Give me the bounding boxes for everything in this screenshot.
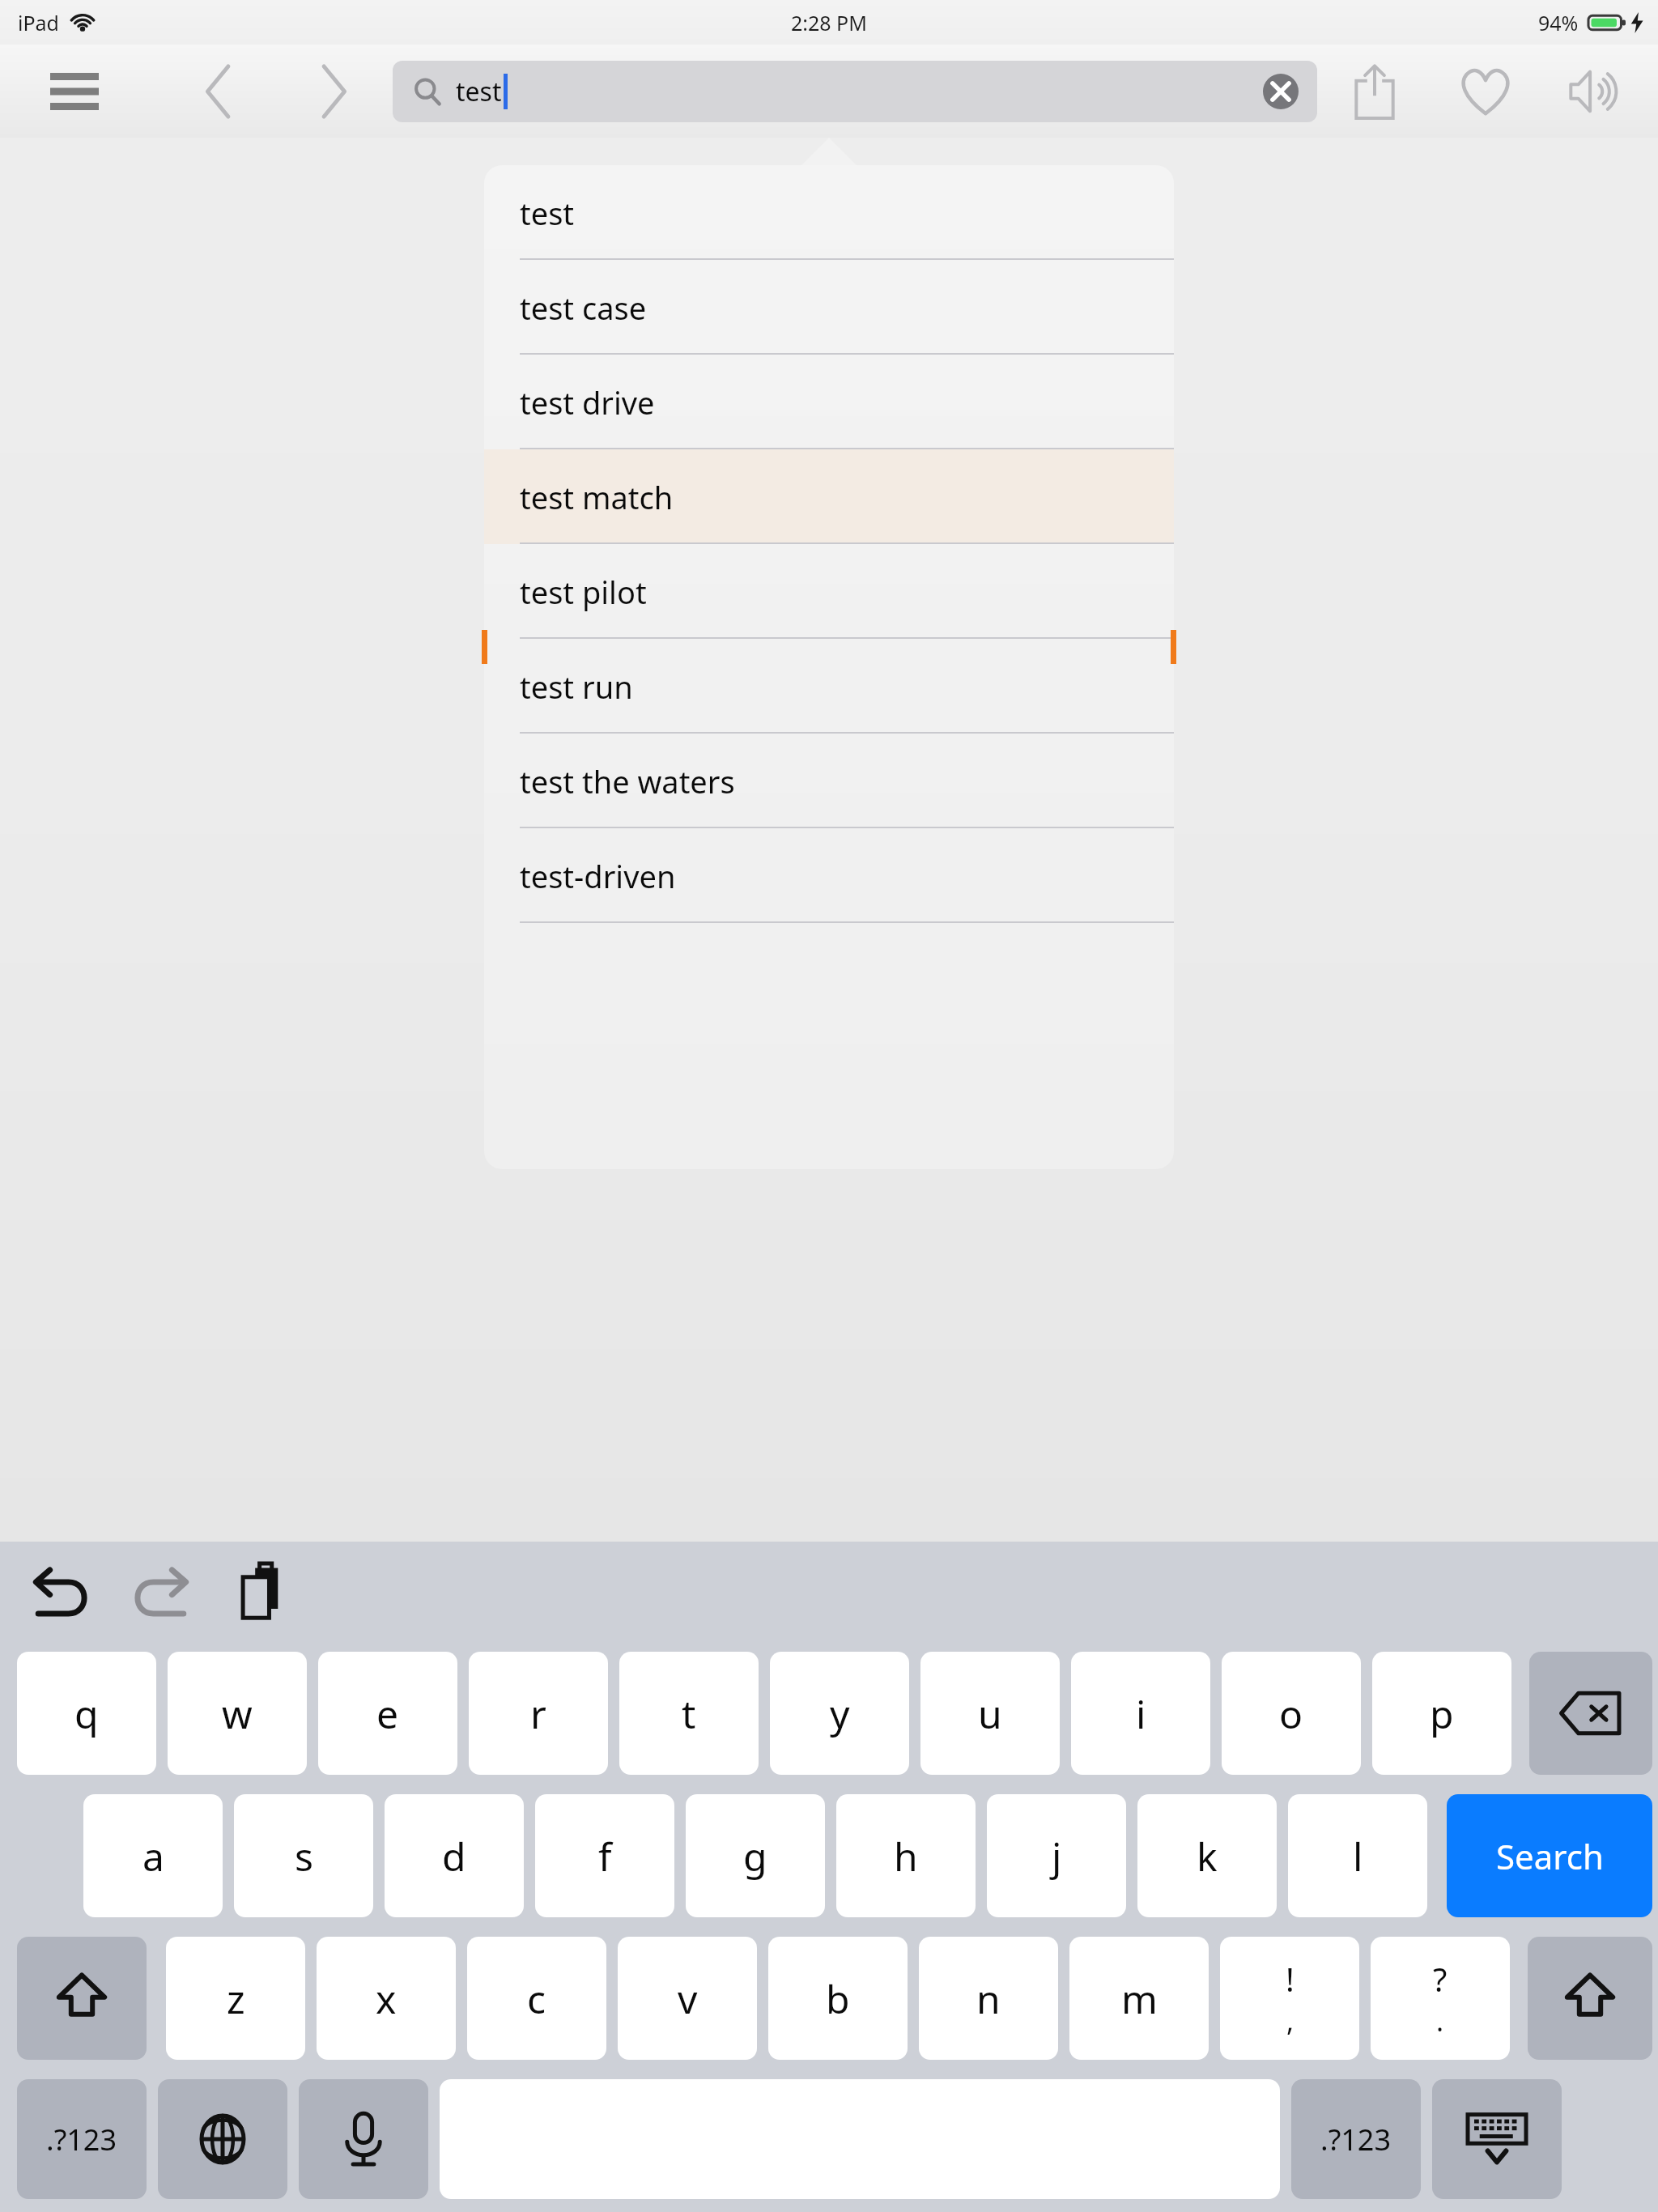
- button[interactable]: u: [920, 1652, 1060, 1775]
- button[interactable]: p: [1372, 1652, 1511, 1775]
- staticText: test-driven: [520, 855, 676, 897]
- staticText: d: [442, 1830, 466, 1882]
- staticText: test pilot: [520, 571, 647, 613]
- staticText: test the waters: [520, 760, 735, 802]
- button[interactable]: ?: [1371, 1937, 1510, 2060]
- button[interactable]: [440, 2079, 1280, 2199]
- staticText: r: [530, 1687, 546, 1740]
- staticText: w: [222, 1687, 253, 1740]
- button[interactable]: Forward: [295, 55, 372, 128]
- button[interactable]: Clear text: [1259, 70, 1303, 113]
- staticText: test case: [520, 287, 647, 329]
- button[interactable]: w: [168, 1652, 307, 1775]
- button[interactable]: test-driven: [484, 828, 1174, 923]
- staticText: .: [1436, 2002, 1444, 2040]
- staticText: b: [826, 1972, 850, 2025]
- staticText: test match: [520, 476, 674, 518]
- button[interactable]: .?123: [17, 2079, 147, 2199]
- button[interactable]: m: [1069, 1937, 1209, 2060]
- button[interactable]: a: [83, 1794, 223, 1917]
- staticText: test run: [520, 666, 633, 708]
- button[interactable]: test: [484, 165, 1174, 260]
- button[interactable]: test the waters: [484, 734, 1174, 828]
- button[interactable]: test match: [484, 449, 1174, 544]
- staticText: test drive: [520, 381, 655, 423]
- staticText: t: [682, 1687, 696, 1740]
- staticText: Search: [1496, 1833, 1604, 1879]
- staticText: u: [978, 1687, 1002, 1740]
- staticText: p: [1430, 1687, 1454, 1740]
- button[interactable]: Share: [1334, 54, 1415, 129]
- button[interactable]: Undo: [23, 1556, 100, 1627]
- button[interactable]: Search: [1447, 1794, 1652, 1917]
- button[interactable]: r: [469, 1652, 608, 1775]
- button[interactable]: test case: [484, 260, 1174, 355]
- button[interactable]: Pronounce: [1556, 54, 1637, 129]
- button[interactable]: test drive: [484, 355, 1174, 449]
- staticText: a: [142, 1830, 164, 1882]
- button[interactable]: Change keyboard: [158, 2079, 287, 2199]
- button[interactable]: x: [317, 1937, 456, 2060]
- staticText: f: [598, 1830, 612, 1882]
- button[interactable]: c: [467, 1937, 606, 2060]
- staticText: o: [1279, 1687, 1303, 1740]
- button[interactable]: Backspace: [1529, 1652, 1652, 1775]
- button[interactable]: Menu: [40, 63, 108, 120]
- staticText: test: [456, 74, 502, 109]
- staticText: .?123: [1320, 2120, 1392, 2159]
- button[interactable]: .?123: [1291, 2079, 1421, 2199]
- staticText: i: [1136, 1687, 1146, 1740]
- button[interactable]: h: [836, 1794, 976, 1917]
- button[interactable]: e: [318, 1652, 457, 1775]
- button[interactable]: Favorite: [1445, 54, 1526, 129]
- button[interactable]: Paste: [225, 1556, 303, 1627]
- staticText: v: [678, 1972, 698, 2025]
- staticText: g: [743, 1830, 767, 1882]
- button[interactable]: n: [919, 1937, 1058, 2060]
- staticText: !: [1286, 1957, 1295, 2001]
- staticText: m: [1121, 1972, 1158, 2025]
- button[interactable]: Hide keyboard: [1432, 2079, 1562, 2199]
- button[interactable]: l: [1288, 1794, 1427, 1917]
- staticText: 94%: [1538, 9, 1579, 36]
- button[interactable]: test: [393, 61, 1317, 122]
- staticText: j: [1052, 1830, 1062, 1882]
- staticText: y: [830, 1687, 850, 1740]
- button[interactable]: b: [768, 1937, 908, 2060]
- staticText: e: [376, 1687, 399, 1740]
- staticText: n: [976, 1972, 1001, 2025]
- button[interactable]: Dictation: [299, 2079, 428, 2199]
- staticText: test: [520, 192, 575, 234]
- staticText: c: [527, 1972, 546, 2025]
- staticText: 2:28 PM: [791, 9, 867, 36]
- button[interactable]: i: [1071, 1652, 1210, 1775]
- button[interactable]: Redo: [121, 1556, 199, 1627]
- button[interactable]: g: [686, 1794, 825, 1917]
- staticText: k: [1197, 1830, 1218, 1882]
- button[interactable]: !: [1220, 1937, 1359, 2060]
- button[interactable]: Shift: [17, 1937, 147, 2060]
- staticText: z: [227, 1972, 245, 2025]
- button[interactable]: s: [234, 1794, 373, 1917]
- button[interactable]: j: [987, 1794, 1126, 1917]
- button[interactable]: Back: [180, 55, 257, 128]
- button[interactable]: test pilot: [484, 544, 1174, 639]
- button[interactable]: v: [618, 1937, 757, 2060]
- button[interactable]: Shift: [1528, 1937, 1652, 2060]
- staticText: q: [74, 1687, 99, 1740]
- button[interactable]: q: [17, 1652, 156, 1775]
- button[interactable]: o: [1222, 1652, 1361, 1775]
- button[interactable]: d: [385, 1794, 524, 1917]
- staticText: s: [295, 1830, 313, 1882]
- staticText: ?: [1433, 1957, 1448, 2001]
- staticText: ,: [1286, 2002, 1295, 2040]
- button[interactable]: f: [535, 1794, 674, 1917]
- button[interactable]: t: [619, 1652, 759, 1775]
- staticText: x: [376, 1972, 397, 2025]
- button[interactable]: z: [166, 1937, 305, 2060]
- button[interactable]: k: [1137, 1794, 1277, 1917]
- button[interactable]: test run: [484, 639, 1174, 734]
- staticText: h: [894, 1830, 918, 1882]
- button[interactable]: y: [770, 1652, 909, 1775]
- staticText: iPad: [18, 9, 59, 36]
